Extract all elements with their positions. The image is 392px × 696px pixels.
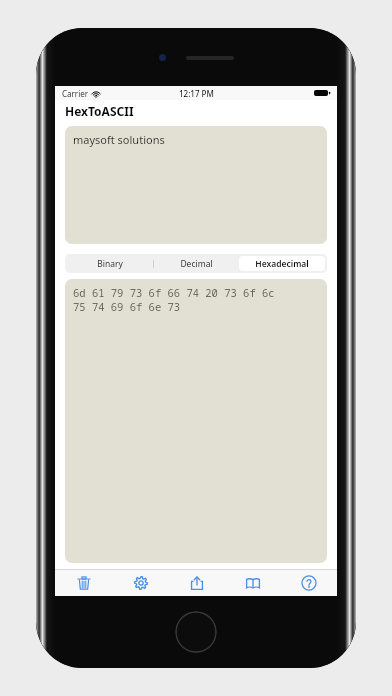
staticText: Carrier — [62, 88, 89, 99]
button[interactable]: Help — [281, 570, 337, 596]
button[interactable]: maysoft solutions — [65, 126, 327, 244]
button[interactable]: Reference — [225, 570, 281, 596]
staticText: HexToASCII — [65, 103, 134, 119]
button[interactable]: Delete — [55, 570, 112, 596]
staticText: maysoft solutions — [73, 132, 165, 147]
staticText: Hexadecimal — [255, 258, 309, 270]
staticText: Decimal — [180, 258, 213, 270]
button[interactable]: Decimal — [153, 256, 239, 271]
button[interactable]: Share — [169, 570, 225, 596]
button[interactable]: Settings — [112, 570, 169, 596]
staticText: Binary — [97, 258, 123, 270]
staticText: 6d 61 79 73 6f 66 74 20 73 6f 6c 75 74 6… — [73, 286, 275, 314]
button[interactable]: Hexadecimal — [239, 256, 325, 271]
button[interactable]: 6d 61 79 73 6f 66 74 20 73 6f 6c 75 74 6… — [65, 279, 327, 563]
button[interactable]: Binary — [67, 256, 153, 271]
staticText: 12:17 PM — [179, 88, 214, 99]
